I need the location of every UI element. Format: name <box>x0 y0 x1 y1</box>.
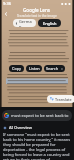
button[interactable]: Search <box>44 65 65 72</box>
button[interactable]: Translate <box>47 95 74 103</box>
staticText: must expect to be sent back to th <box>11 113 70 118</box>
button[interactable]: English <box>38 19 61 27</box>
staticText: Translate <box>55 97 72 102</box>
staticText: Copy <box>12 66 21 71</box>
staticText: AI Overview <box>9 125 32 130</box>
staticText: German <box>19 19 34 27</box>
staticText: 9:36 <box>3 1 11 6</box>
button[interactable]: German <box>13 19 36 27</box>
staticText: Translate text in the image <box>17 14 57 18</box>
staticText: Listen <box>29 66 40 71</box>
button[interactable]: Copy <box>9 65 24 72</box>
staticText: English <box>43 21 57 26</box>
staticText: Search <box>46 66 59 71</box>
button[interactable]: must expect to be sent back to th <box>2 110 72 121</box>
staticText: If someone "must expect to be sent back … <box>3 132 71 160</box>
staticText: Google Lens <box>23 7 51 13</box>
button[interactable]: Back <box>0 8 11 19</box>
button[interactable]: Listen <box>26 65 42 72</box>
